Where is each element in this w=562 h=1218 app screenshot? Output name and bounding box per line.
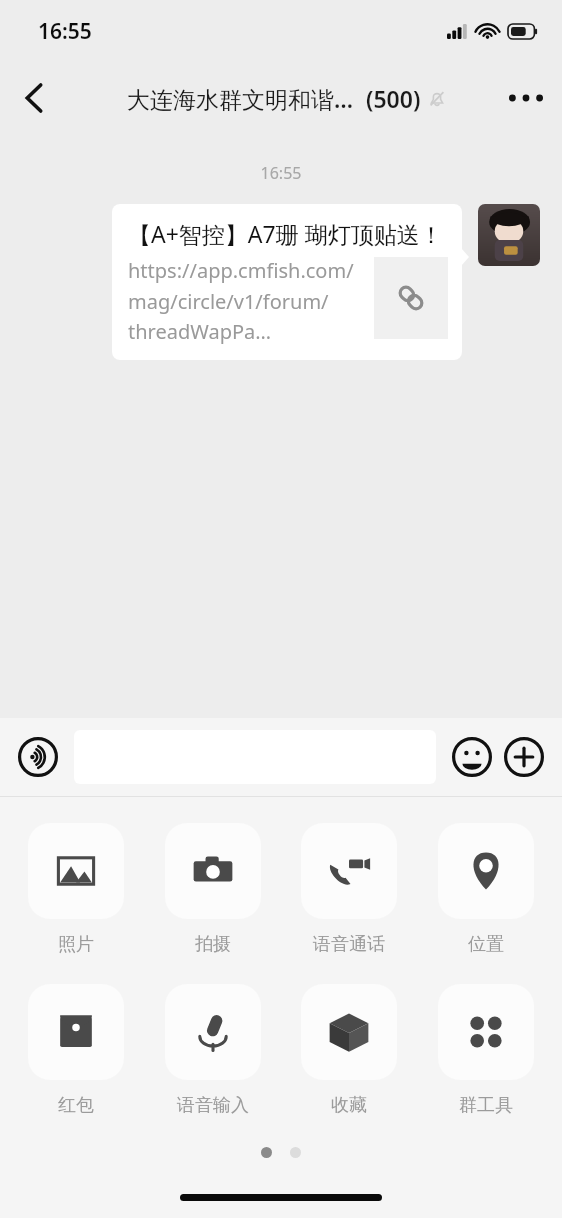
button[interactable]: Avatar [478,204,540,266]
button[interactable]: 拍摄 [153,821,273,958]
button[interactable]: 语音输入 [153,982,273,1119]
staticText: 大连海水群文明和谐… [127,83,354,114]
staticText: 【A+智控】A7珊 瑚灯顶贴送！ [128,218,443,249]
staticText: https://app.cmfish.com/mag/circle/v1/for… [128,257,364,344]
staticText: 红包 [58,1094,94,1117]
button[interactable]: 收藏 [289,982,409,1119]
button[interactable]: 位置 [426,821,546,958]
staticText: 拍摄 [195,933,231,956]
button[interactable]: More functions [502,735,546,779]
button[interactable]: Back [8,72,60,124]
button[interactable]: Emoji [450,735,494,779]
button[interactable]: 群工具 [426,982,546,1119]
button[interactable]: 照片 [16,821,136,958]
staticText: 收藏 [331,1094,367,1117]
staticText: 照片 [58,933,94,956]
button[interactable]: 语音通话 [289,821,409,958]
staticText: 位置 [468,933,504,956]
staticText: 语音通话 [313,933,385,956]
button[interactable]: 【A+智控】A7珊 瑚灯顶贴送！ [112,204,462,360]
staticText: 16:55 [0,162,562,184]
staticText: 语音输入 [177,1094,249,1117]
staticText: 16:55 [38,17,92,46]
button[interactable]: More options [500,72,552,124]
staticText: (500) [366,83,421,114]
button[interactable]: 红包 [16,982,136,1119]
button[interactable]: Voice input [16,735,60,779]
staticText: 群工具 [459,1094,513,1117]
